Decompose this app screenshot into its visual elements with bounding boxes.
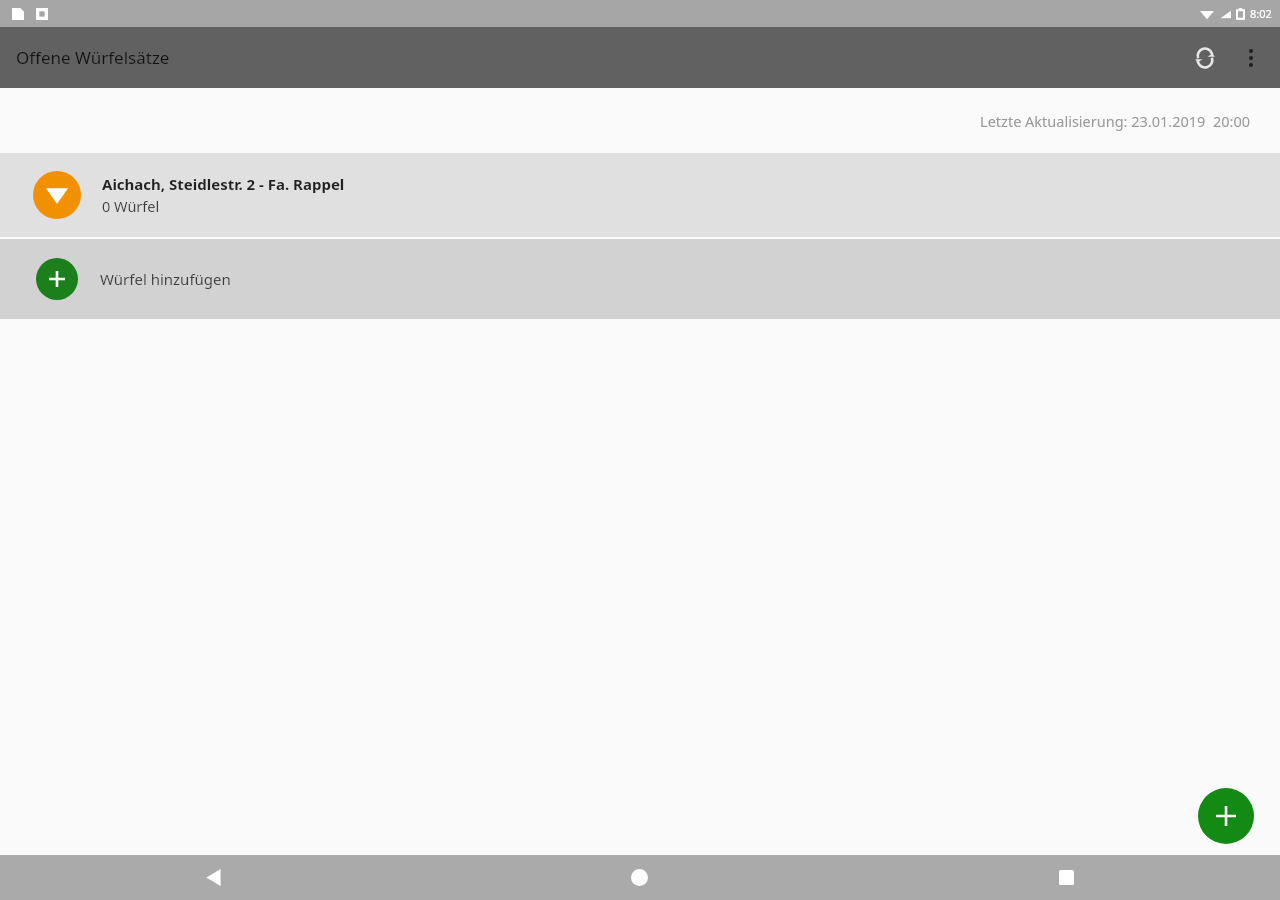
button[interactable]: Würfel hinzufügen bbox=[0, 239, 1280, 319]
button[interactable]: Übersicht bbox=[853, 855, 1280, 900]
staticText: Offene Würfelsätze bbox=[16, 46, 170, 69]
staticText: 0 Würfel bbox=[102, 196, 160, 216]
button[interactable]: Würfelsatz hinzufügen bbox=[1198, 788, 1254, 844]
staticText: 8:02 bbox=[1250, 6, 1272, 21]
staticText: Aichach, Steidlestr. 2 - Fa. Rappel bbox=[102, 174, 345, 194]
button[interactable]: Weitere Optionen bbox=[1228, 35, 1274, 81]
button[interactable]: Aktualisieren bbox=[1182, 35, 1228, 81]
staticText: Letzte Aktualisierung: 23.01.2019 20:00 bbox=[980, 111, 1250, 131]
button[interactable]: Aichach, Steidlestr. 2 - Fa. Rappel bbox=[0, 153, 1280, 237]
button[interactable]: Zurück bbox=[0, 855, 426, 900]
staticText: Würfel hinzufügen bbox=[100, 269, 231, 289]
button[interactable]: Startbildschirm bbox=[426, 855, 853, 900]
